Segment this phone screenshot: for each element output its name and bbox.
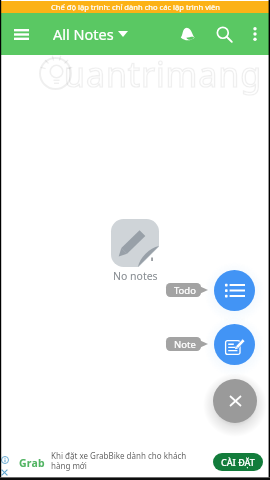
staticText: No notes [113,269,158,283]
button[interactable]: Todo [214,270,255,311]
staticText: CÀI ĐẶT [221,456,255,468]
staticText: All Notes [53,24,114,44]
button[interactable]: Close menu [213,379,257,423]
button[interactable]: All Notes [53,24,128,44]
staticText: Khi đặt xe GrabBike dành cho khách hàng … [51,450,187,472]
button[interactable]: Open navigation menu [3,16,39,52]
button[interactable]: Search [207,17,241,51]
button[interactable]: Notifications [170,17,204,51]
staticText: Todo [174,284,196,297]
button[interactable]: Todo [166,283,208,297]
staticText: uantrimang [64,51,262,97]
staticText: Grab [19,456,45,470]
button[interactable]: Note [166,337,208,351]
staticText: Chế độ lập trình: chỉ dành cho các lập t… [51,2,220,12]
staticText: Note [174,338,196,351]
button[interactable]: More options [241,20,269,48]
button[interactable]: CÀI ĐẶT [213,453,263,471]
button[interactable]: Note [214,324,255,365]
